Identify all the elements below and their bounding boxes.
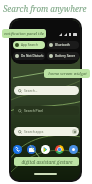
staticText: Search... bbox=[24, 88, 38, 93]
button[interactable]: Battery Saver bbox=[47, 52, 79, 60]
staticText: Battery Saver bbox=[55, 54, 76, 58]
staticText: Search apps bbox=[24, 129, 44, 134]
button[interactable]: Chrome bbox=[55, 145, 64, 154]
button[interactable]: Bluetooth bbox=[47, 41, 79, 49]
button[interactable]: Do Not Disturb bbox=[13, 52, 45, 60]
button[interactable]: Search apps bbox=[14, 127, 79, 136]
staticText: Search from anywhere bbox=[3, 3, 87, 14]
button[interactable]: Search... bbox=[14, 86, 79, 95]
button[interactable]: Messages bbox=[27, 145, 36, 154]
button[interactable]: Phone bbox=[13, 145, 22, 154]
button[interactable]: Play Store bbox=[41, 145, 50, 154]
button[interactable]: home screen widget bbox=[44, 69, 90, 78]
button[interactable]: Camera bbox=[69, 145, 78, 154]
button[interactable]: Search Pixel bbox=[14, 106, 79, 115]
staticText: notification panel tile bbox=[4, 31, 44, 36]
button[interactable]: App Search bbox=[13, 41, 45, 49]
staticText: Search Pixel bbox=[24, 108, 44, 113]
staticText: Do Not Disturb bbox=[21, 54, 44, 58]
button[interactable]: digital assistant gesture bbox=[14, 157, 79, 166]
staticText: home screen widget bbox=[48, 71, 87, 77]
staticText: digital assistant gesture bbox=[21, 159, 73, 165]
staticText: App Search bbox=[21, 43, 38, 47]
staticText: Bluetooth bbox=[55, 43, 70, 47]
button[interactable]: notification panel tile bbox=[2, 29, 46, 38]
